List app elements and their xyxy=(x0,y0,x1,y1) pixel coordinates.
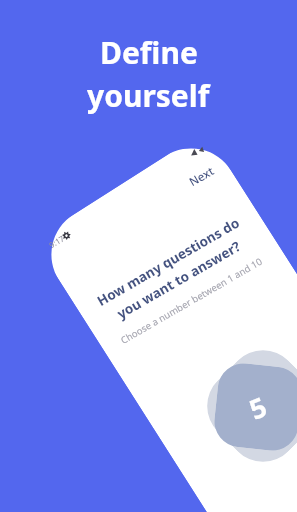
staticText: yourself xyxy=(87,75,210,116)
staticText: Define xyxy=(100,32,198,73)
staticText: 5 xyxy=(244,387,272,428)
staticText: How many questions do you want to answer… xyxy=(85,209,262,333)
other: Settings xyxy=(60,229,73,242)
button[interactable]: Next xyxy=(179,156,224,197)
staticText: Next xyxy=(186,163,217,190)
staticText: 9:17 xyxy=(47,233,66,250)
staticText: Choose a number between 1 and 10 xyxy=(118,255,265,347)
button[interactable] xyxy=(212,361,297,453)
